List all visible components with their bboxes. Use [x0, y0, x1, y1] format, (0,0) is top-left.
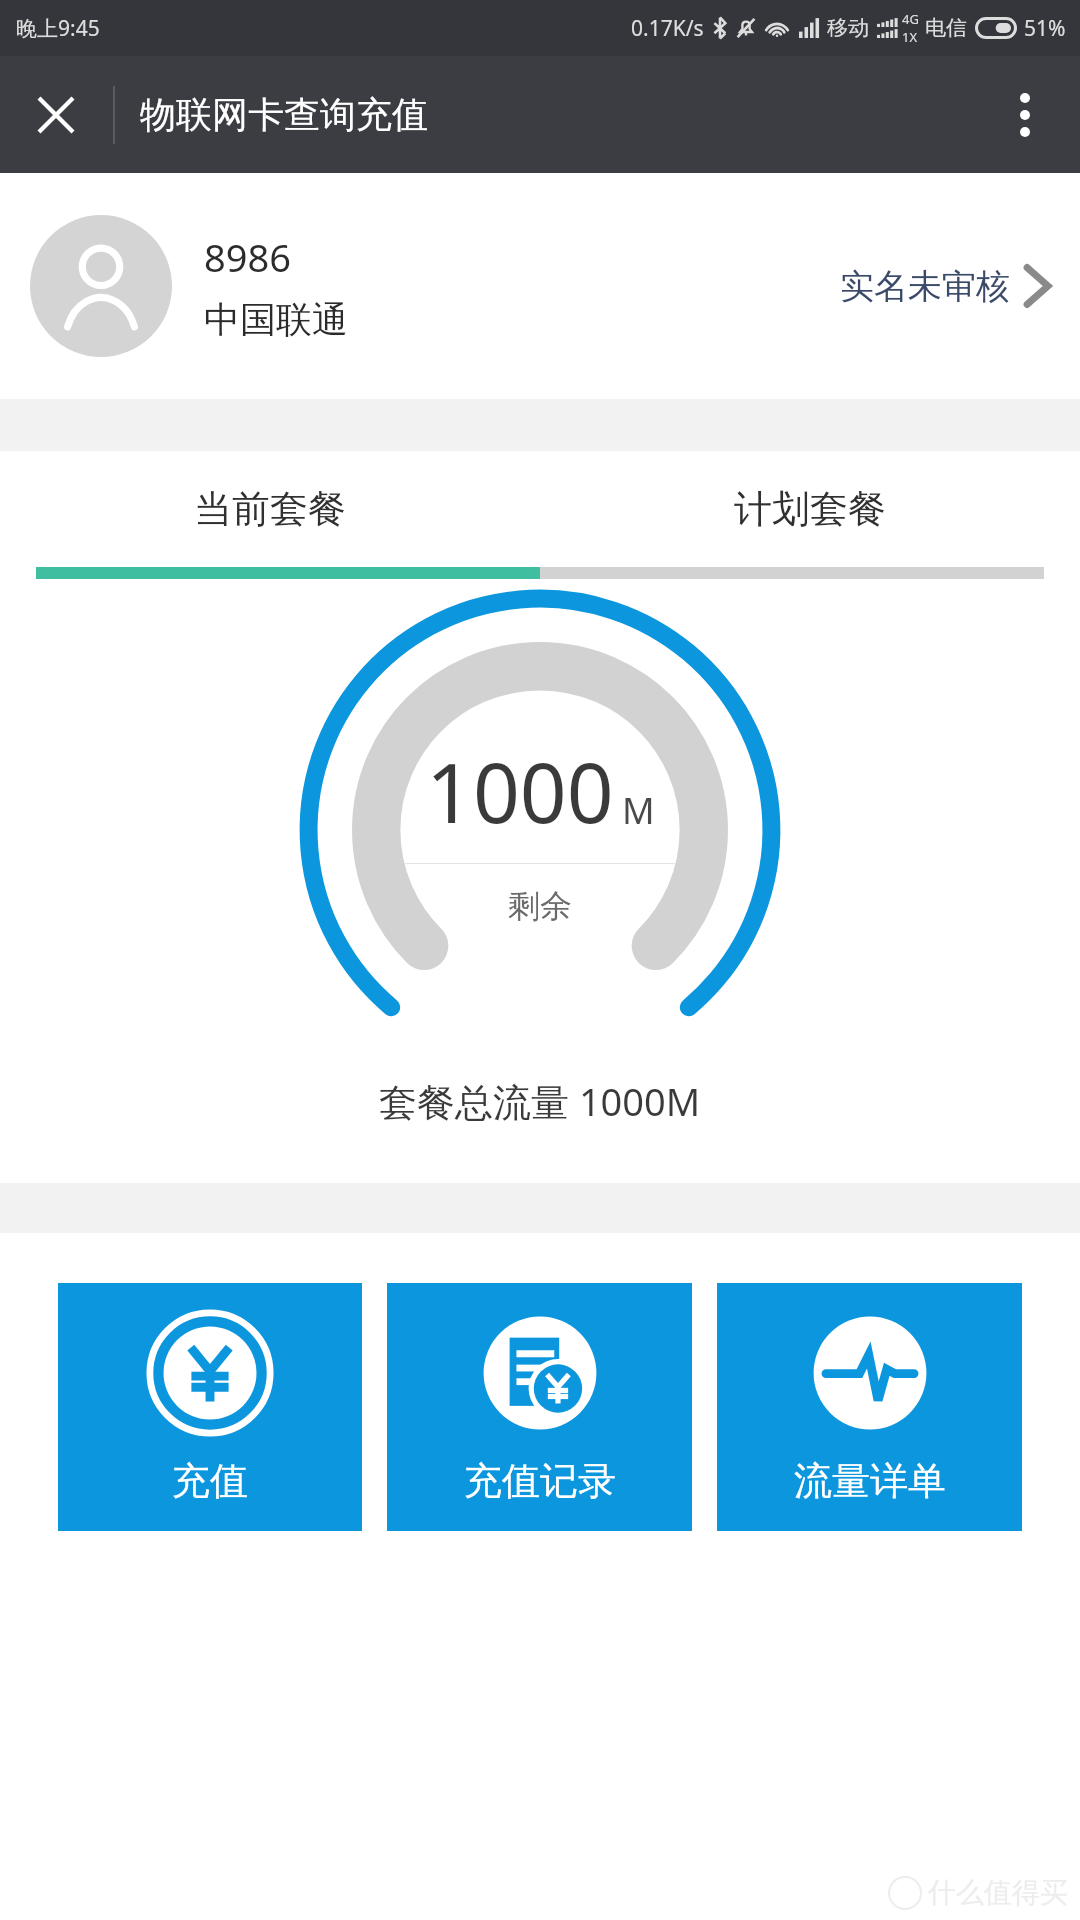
staticText: 8986 [204, 231, 291, 283]
button[interactable]: 流量详单 [717, 1283, 1022, 1531]
button[interactable]: Close [22, 81, 90, 149]
staticText: 实名未审核 [840, 265, 1010, 308]
button[interactable]: 充值 [58, 1283, 362, 1531]
staticText: 充值记录 [464, 1457, 616, 1505]
button[interactable]: More options [990, 80, 1060, 150]
button[interactable]: 充值记录 [387, 1283, 692, 1531]
staticText: 物联网卡查询充值 [140, 92, 428, 137]
staticText: 流量详单 [794, 1457, 946, 1505]
button[interactable]: 当前套餐 [0, 451, 540, 567]
staticText: 4G [902, 10, 919, 28]
staticText: 充值 [172, 1457, 248, 1505]
staticText: 移动 [827, 15, 869, 41]
staticText: 当前套餐 [194, 485, 346, 533]
staticText: 1000 [426, 735, 614, 847]
staticText: 晚上9:45 [16, 14, 100, 43]
button[interactable]: 计划套餐 [540, 451, 1080, 567]
staticText: 什么值得买 [928, 1875, 1068, 1910]
staticText: 计划套餐 [734, 485, 886, 533]
staticText: 套餐总流量 1000M [379, 1075, 701, 1127]
staticText: 电信 [925, 15, 967, 41]
staticText: 51% [1024, 14, 1066, 43]
staticText: 中国联通 [204, 297, 348, 342]
staticText: 0.17K/s [631, 14, 704, 43]
staticText: 剩余 [508, 886, 572, 926]
button[interactable]: 8986 [0, 173, 1080, 399]
staticText: 1X [902, 28, 918, 46]
staticText: M [622, 786, 655, 835]
